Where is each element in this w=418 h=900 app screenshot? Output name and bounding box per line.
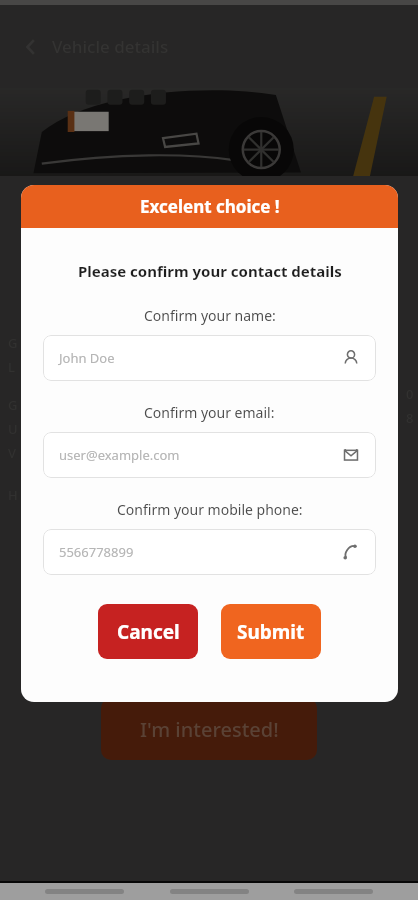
button[interactable]: John Doe bbox=[43, 335, 376, 381]
staticText: G bbox=[8, 334, 18, 352]
button[interactable]: Colour option bbox=[178, 596, 241, 659]
button[interactable]: Colour option bbox=[102, 596, 165, 659]
button[interactable]: Submit bbox=[221, 604, 321, 659]
staticText: L bbox=[8, 358, 15, 376]
staticText: Confirm your name: bbox=[144, 306, 276, 325]
staticText: Cancel bbox=[117, 619, 180, 645]
button[interactable]: I'm interested! bbox=[101, 698, 317, 760]
button[interactable]: Cancel bbox=[98, 604, 198, 659]
staticText: 5566778899 bbox=[59, 543, 342, 561]
button[interactable]: 5566778899 bbox=[43, 529, 376, 575]
staticText: U bbox=[8, 420, 18, 438]
staticText: 8 bbox=[406, 409, 414, 427]
staticText: Confirm your email: bbox=[144, 403, 275, 422]
staticText: Vehicle details bbox=[52, 35, 169, 58]
staticText: Confirm your mobile phone: bbox=[117, 500, 303, 519]
staticText: V bbox=[8, 444, 16, 462]
staticText: G bbox=[8, 396, 18, 414]
button[interactable]: Colour option bbox=[254, 596, 317, 659]
staticText: user@example.com bbox=[59, 446, 342, 464]
staticText: Excelent choice ! bbox=[140, 195, 280, 218]
staticText: John Doe bbox=[59, 349, 342, 367]
button[interactable]: user@example.com bbox=[43, 432, 376, 478]
staticText: H bbox=[8, 486, 18, 504]
staticText: Submit bbox=[237, 619, 305, 645]
staticText: I'm interested! bbox=[140, 716, 279, 743]
staticText: 0 bbox=[406, 385, 414, 403]
staticText: Please confirm your contact details bbox=[78, 261, 342, 281]
